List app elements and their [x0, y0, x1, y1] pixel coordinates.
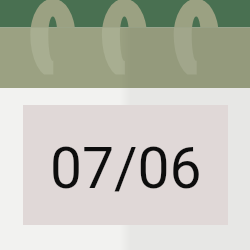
- button[interactable]: 07/06: [23, 105, 228, 225]
- staticText: 07/06: [50, 135, 202, 202]
